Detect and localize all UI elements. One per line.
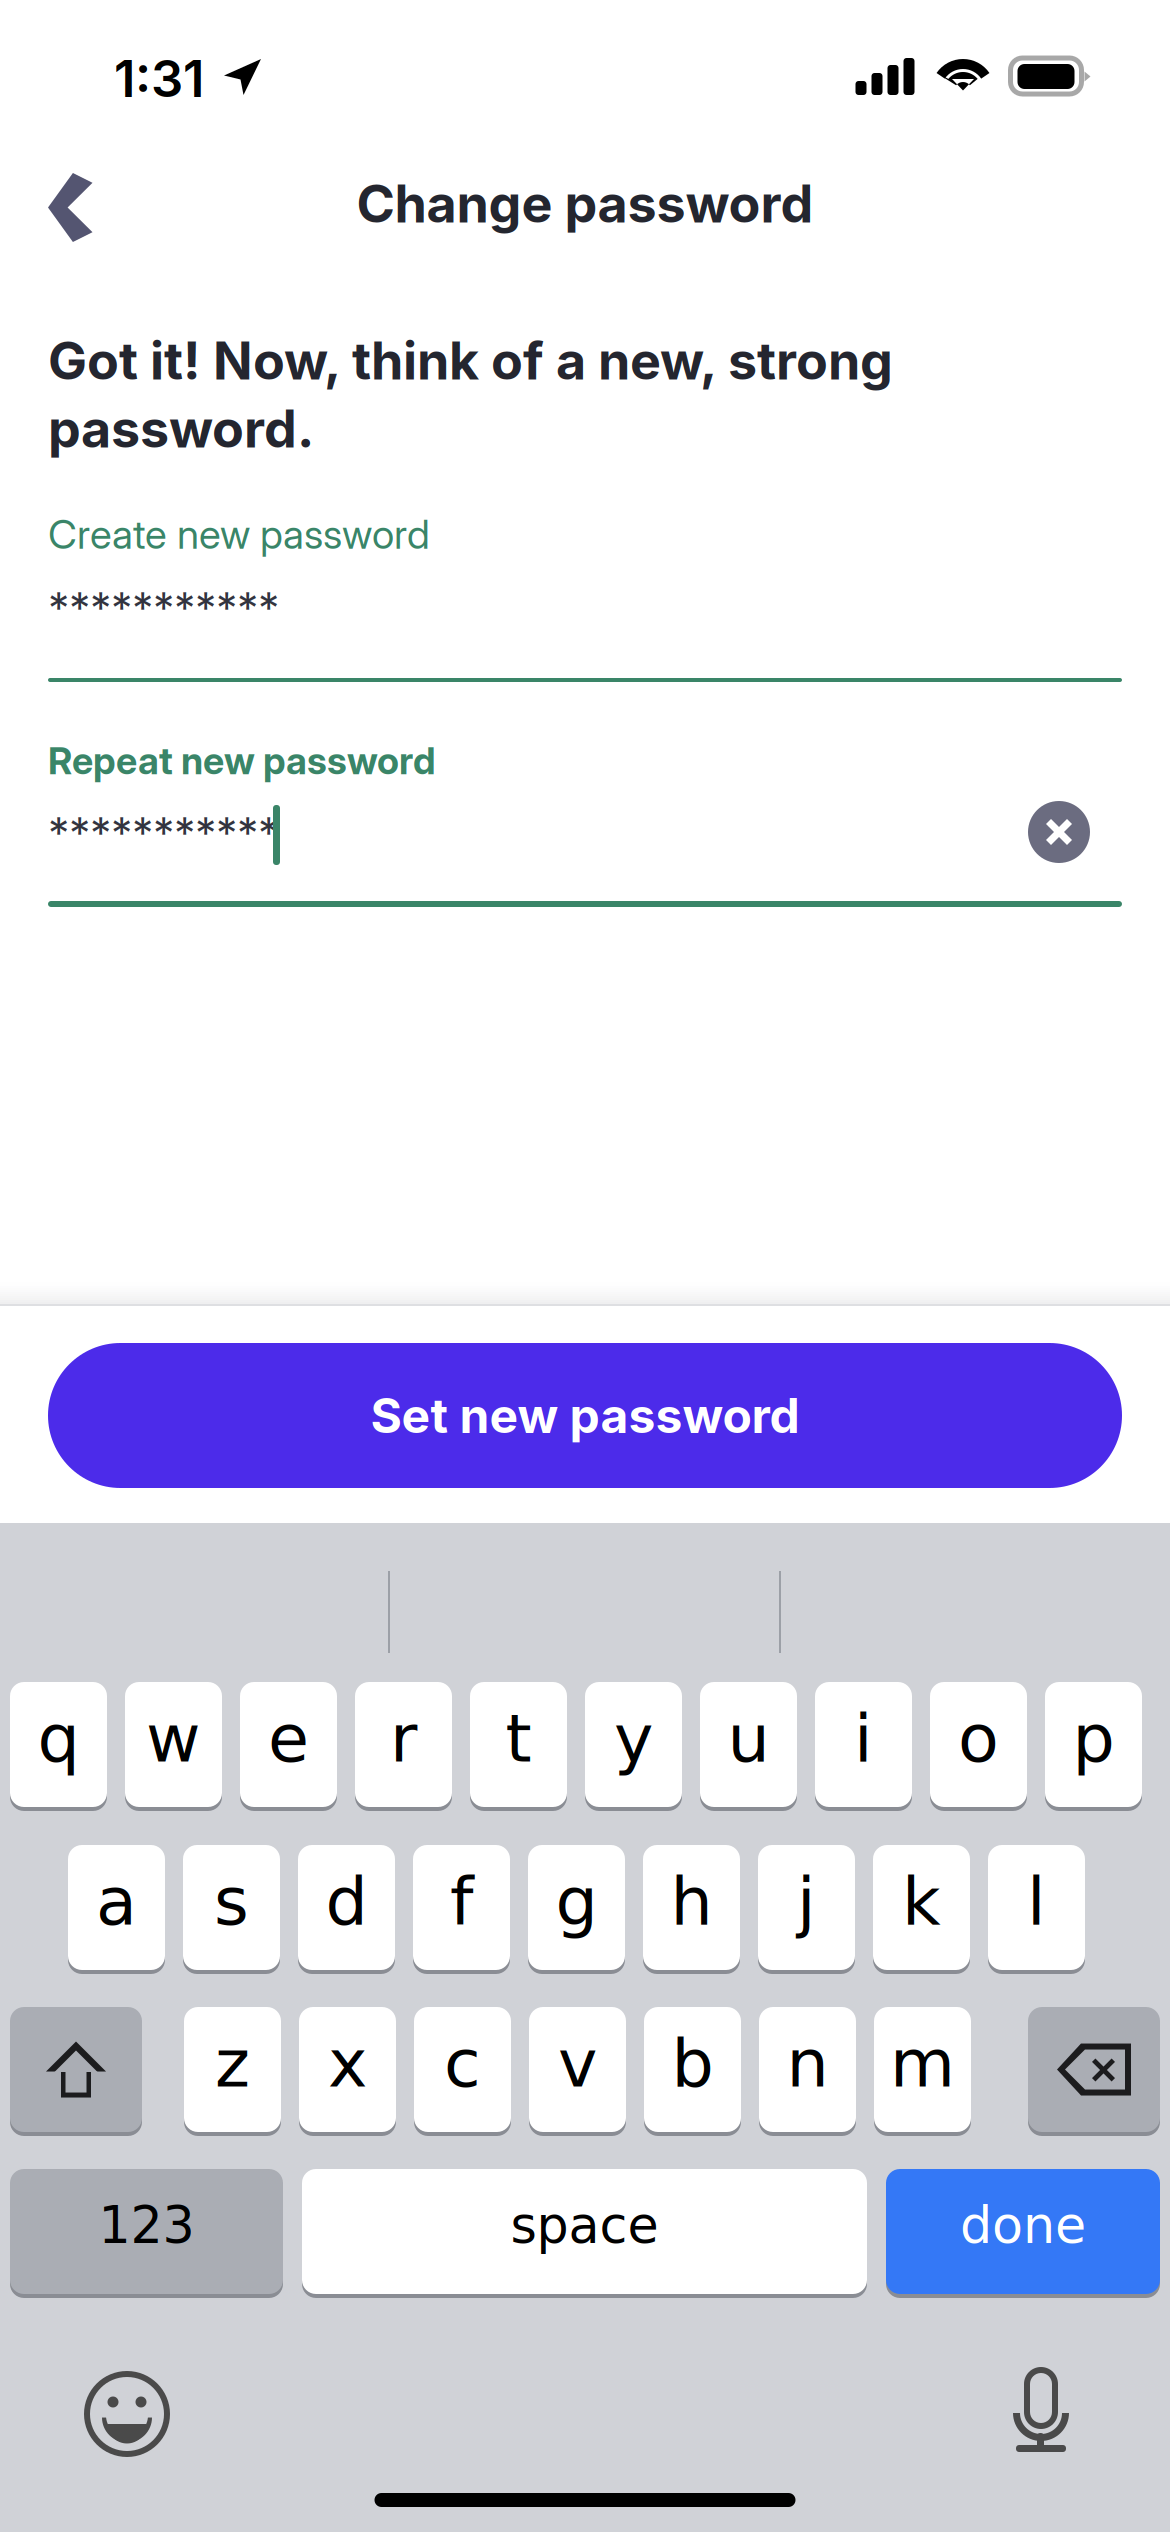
staticText: Create new password [48,510,430,558]
button[interactable]: done [886,2167,1160,2296]
button[interactable]: Emoji keyboard [66,2353,188,2475]
button[interactable]: v [529,2005,626,2134]
button[interactable]: y [585,1680,682,1809]
button[interactable]: Dictation [995,2349,1087,2471]
button[interactable]: 123 [10,2167,283,2296]
staticText: p [1072,1700,1114,1777]
staticText: w [146,1700,201,1777]
button[interactable]: b [644,2005,741,2134]
staticText: password. [48,397,314,460]
staticText: Change password [356,172,813,235]
staticText: done [960,2196,1086,2255]
button[interactable]: Delete [1028,2005,1160,2134]
staticText: h [670,1863,712,1940]
button[interactable]: z [184,2005,281,2134]
staticText: Got it! Now, think of a new, strong [48,329,893,392]
button[interactable]: a [68,1843,165,1972]
button[interactable]: c [414,2005,511,2134]
staticText: s [214,1863,249,1940]
button[interactable]: n [759,2005,856,2134]
button[interactable]: j [758,1843,855,1972]
button[interactable]: h [643,1843,740,1972]
staticText: o [958,1700,999,1777]
button[interactable]: Set new password [0,1343,1170,1488]
button[interactable]: s [183,1843,280,1972]
button[interactable]: p [1045,1680,1142,1809]
staticText: c [444,2025,481,2102]
button[interactable]: x [299,2005,396,2134]
staticText: *********** [48,807,279,859]
staticText: q [37,1700,79,1777]
button[interactable]: k [873,1843,970,1972]
button[interactable]: r [355,1680,452,1809]
staticText: d [325,1863,367,1940]
button[interactable]: q [10,1680,107,1809]
button[interactable]: f [413,1843,510,1972]
staticText: 123 [98,2196,194,2255]
staticText: t [505,1700,531,1777]
button[interactable]: d [298,1843,395,1972]
staticText: *********** [48,582,279,634]
staticText: e [268,1700,309,1777]
button[interactable]: w [125,1680,222,1809]
staticText: 1:31 [114,48,204,109]
staticText: g [555,1863,597,1940]
button[interactable]: space [302,2167,867,2296]
staticText: x [328,2025,367,2102]
staticText: k [902,1863,941,1940]
staticText: j [797,1863,816,1940]
button[interactable]: o [930,1680,1027,1809]
staticText: n [786,2025,828,2102]
staticText: a [96,1863,137,1940]
button[interactable]: i [815,1680,912,1809]
button[interactable]: u [700,1680,797,1809]
button[interactable]: Shift [10,2005,142,2134]
staticText: f [450,1863,473,1940]
staticText: u [727,1700,769,1777]
staticText: r [390,1700,417,1777]
button[interactable]: l [988,1843,1085,1972]
button[interactable]: Clear text [1028,801,1090,863]
button[interactable]: Back [24,149,117,266]
staticText: y [614,1700,653,1777]
button[interactable]: e [240,1680,337,1809]
staticText: m [890,2025,955,2102]
staticText: z [215,2025,250,2102]
staticText: Repeat new password [48,738,436,783]
staticText: Set new password [370,1386,799,1445]
button[interactable]: m [874,2005,971,2134]
button[interactable]: g [528,1843,625,1972]
staticText: i [854,1700,873,1777]
staticText: v [558,2025,597,2102]
staticText: b [671,2025,713,2102]
staticText: space [510,2196,658,2255]
button[interactable]: t [470,1680,567,1809]
staticText: l [1027,1863,1046,1940]
